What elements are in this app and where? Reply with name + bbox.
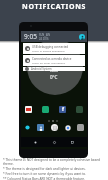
staticText: Connected as a media device <box>32 57 72 61</box>
staticText: SUN, JAN <box>39 33 50 37</box>
staticText: NOTIFICATIONS <box>22 2 87 12</box>
staticText: ** Coloured Status Bars ARE NOT a themea… <box>3 177 85 180</box>
button[interactable]: All apps <box>51 124 58 131</box>
button[interactable]: Back <box>33 140 38 145</box>
button[interactable]: Contacts <box>37 124 44 131</box>
button[interactable]: Recent apps <box>70 140 75 145</box>
button[interactable]: Connected as a media device <box>23 55 85 66</box>
staticText: * Feel free to turn it on some dynamic b… <box>3 172 87 176</box>
staticText: 0°C <box>50 74 58 80</box>
button[interactable]: Rain <box>19 22 88 158</box>
button[interactable]: Home <box>52 140 57 145</box>
button[interactable]: User profile <box>79 34 85 40</box>
button[interactable]: Gmail <box>25 106 32 113</box>
button[interactable]: USB debugging connected <box>23 43 85 54</box>
staticText: * This theme IS NOT designed to be a com… <box>3 158 108 166</box>
staticText: Touch for other USB options <box>32 61 66 64</box>
staticText: Touch to disable debugging <box>32 49 65 52</box>
staticText: f <box>62 106 64 113</box>
staticText: Android System <box>31 67 52 71</box>
staticText: Rain <box>50 68 59 73</box>
staticText: 9:05 <box>24 32 37 41</box>
button[interactable]: NOTIFICATIONS <box>0 0 108 14</box>
button[interactable]: Phone <box>24 124 31 131</box>
staticText: 24 2016 <box>39 37 49 41</box>
button[interactable]: Chrome <box>64 124 71 131</box>
button[interactable]: Facebook <box>59 106 66 113</box>
button[interactable]: App <box>42 106 49 113</box>
button[interactable]: App <box>76 106 83 113</box>
button[interactable]: Android System <box>23 67 85 71</box>
staticText: * The theme is designed for dark and lig… <box>3 167 86 171</box>
staticText: USB debugging connected <box>32 45 69 49</box>
button[interactable]: App <box>77 124 84 131</box>
